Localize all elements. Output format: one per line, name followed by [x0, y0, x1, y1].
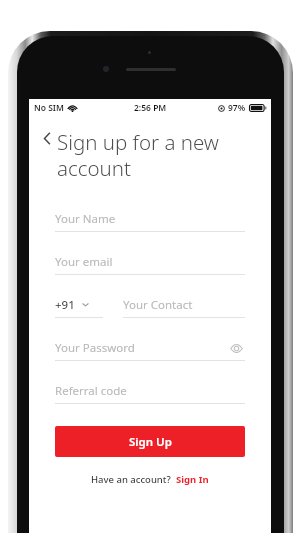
button[interactable]: Show password [227, 339, 245, 357]
button[interactable]: Your Contact [123, 292, 245, 318]
button[interactable]: Referral code [55, 378, 245, 404]
staticText: Referral code [55, 383, 127, 399]
button[interactable]: Sign In [176, 473, 209, 486]
button[interactable]: Your Name [55, 206, 245, 232]
staticText: Your Contact [123, 297, 193, 313]
staticText: 2:56 PM [134, 102, 167, 114]
button[interactable]: Country code +91 [55, 292, 113, 318]
staticText: Your email [55, 254, 113, 270]
button[interactable]: Sign Up [55, 426, 245, 457]
staticText: 97% [228, 102, 246, 114]
staticText: No SIM [34, 102, 64, 114]
button[interactable]: Back [37, 128, 57, 148]
staticText: Your Name [55, 211, 116, 227]
staticText: Sign Up [129, 434, 172, 450]
staticText: +91 [55, 297, 75, 313]
staticText: Sign up for a new account [57, 128, 219, 182]
staticText: Sign In [176, 473, 209, 486]
staticText: Have an account? [91, 473, 171, 486]
staticText: Your Password [55, 340, 135, 356]
button[interactable]: Your email [55, 249, 245, 275]
button[interactable]: Your Password [55, 335, 245, 361]
